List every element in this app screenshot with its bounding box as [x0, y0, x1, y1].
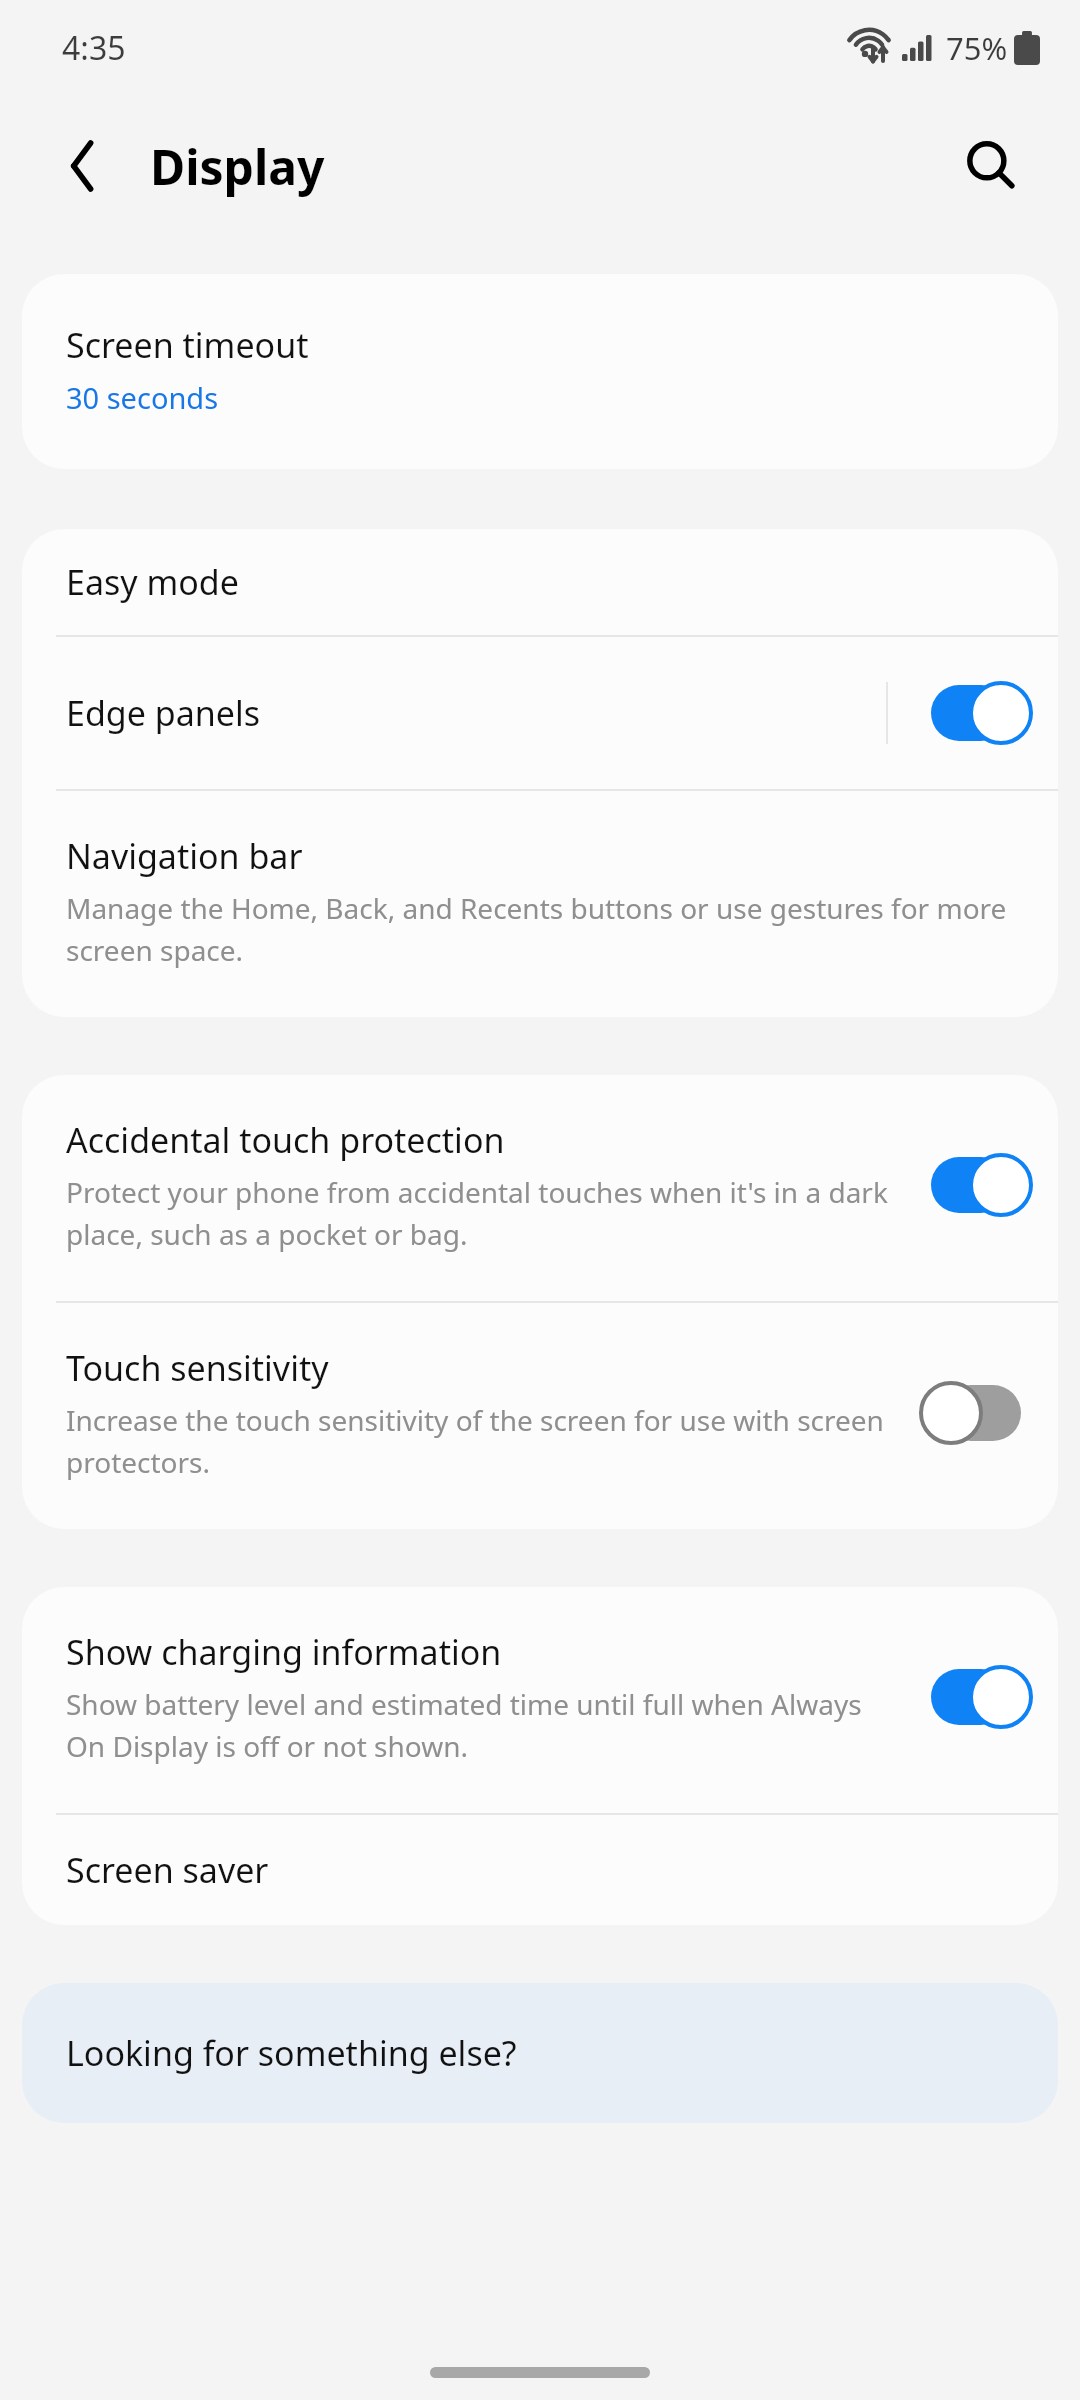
staticText: 75%	[946, 27, 1008, 69]
staticText: Show charging information	[66, 1629, 502, 1675]
staticText: Show battery level and estimated time un…	[66, 1685, 904, 1765]
staticText: Display	[150, 134, 325, 199]
button[interactable]: Easy mode	[22, 529, 1058, 635]
staticText: Manage the Home, Back, and Recents butto…	[66, 889, 1014, 969]
button[interactable]: Search	[948, 123, 1034, 209]
staticText: Edge panels	[66, 690, 260, 736]
button[interactable]: Show charging information	[22, 1587, 1058, 1813]
button[interactable]: Edge panels	[22, 637, 1058, 789]
button[interactable]: On	[924, 1149, 1028, 1221]
button[interactable]: Touch sensitivity	[22, 1303, 1058, 1529]
button[interactable]: On	[924, 677, 1028, 749]
button[interactable]: On	[924, 1661, 1028, 1733]
button[interactable]: Off	[924, 1377, 1028, 1449]
staticText: 4:35	[62, 26, 126, 70]
staticText: Navigation bar	[66, 833, 303, 879]
staticText: 30 seconds	[66, 378, 219, 417]
button[interactable]: Back	[44, 123, 130, 209]
button[interactable]: Navigation bar	[22, 791, 1058, 1017]
staticText: Screen saver	[66, 1847, 269, 1893]
staticText: Increase the touch sensitivity of the sc…	[66, 1401, 904, 1481]
staticText: Accidental touch protection	[66, 1117, 505, 1163]
button[interactable]: Screen timeout	[22, 274, 1058, 469]
staticText: Touch sensitivity	[66, 1345, 329, 1391]
staticText: Protect your phone from accidental touch…	[66, 1173, 904, 1253]
staticText: Looking for something else?	[66, 2030, 517, 2076]
button[interactable]: Screen saver	[22, 1815, 1058, 1925]
button[interactable]: Looking for something else?	[22, 1983, 1058, 2123]
staticText: Screen timeout	[66, 322, 309, 368]
button[interactable]: Accidental touch protection	[22, 1075, 1058, 1301]
staticText: Easy mode	[66, 559, 239, 605]
